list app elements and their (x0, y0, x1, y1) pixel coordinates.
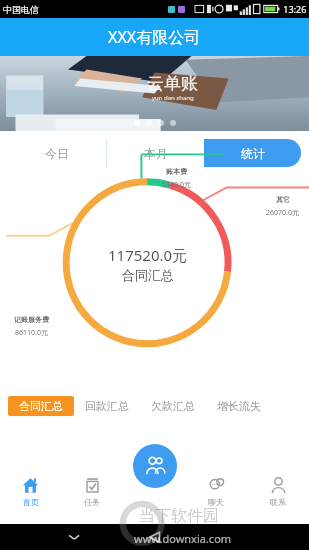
staticText: 联系 (270, 497, 286, 507)
staticText: 统计 (241, 146, 265, 161)
staticText: 本月 (144, 146, 168, 161)
staticText: 聊天 (208, 497, 224, 507)
button[interactable]: 聊天 (185, 460, 247, 524)
staticText: 首页 (23, 497, 39, 507)
staticText: 13:26 (281, 3, 307, 15)
staticText: 合同汇总 (122, 267, 174, 283)
button[interactable]: 任务 (61, 460, 123, 524)
staticText: 117520.0元 (108, 245, 188, 265)
staticText: 回款汇总 (85, 399, 129, 413)
staticText: www.downxia.com (134, 531, 232, 546)
staticText: 记账服务费 (14, 315, 49, 324)
staticText: 增长流失 (217, 399, 261, 413)
button[interactable]: 回款汇总 (74, 396, 140, 416)
button[interactable]: 增长流失 (206, 396, 272, 416)
staticText: 云单账 (147, 73, 198, 94)
button[interactable]: 首页 (0, 460, 61, 524)
staticText: 其它 (276, 195, 290, 204)
staticText: 中国电信 (3, 4, 39, 15)
staticText: 合同汇总 (19, 399, 63, 413)
staticText: 当下软件园 (139, 506, 219, 526)
button[interactable]: 本月 (107, 139, 204, 167)
button[interactable]: 合同汇总 (8, 396, 74, 416)
button[interactable]: 云单账 (0, 56, 309, 131)
staticText: 任务 (84, 497, 100, 507)
staticText: XXX有限公司 (108, 26, 201, 48)
staticText: 欠款汇总 (151, 399, 195, 413)
staticText: 5340.0元 (162, 180, 191, 190)
button[interactable]: 欠款汇总 (140, 396, 206, 416)
staticText: 26070.0元 (266, 208, 299, 218)
button[interactable]: 客户 (133, 444, 177, 488)
button[interactable]: 统计 (204, 139, 301, 167)
staticText: 今日 (45, 146, 69, 161)
staticText: 86110.0元 (15, 328, 48, 338)
staticText: 账本费 (166, 167, 187, 176)
staticText: yun dan zhang (152, 94, 194, 102)
button[interactable]: 联系 (247, 460, 309, 524)
button[interactable]: 今日 (8, 139, 106, 167)
